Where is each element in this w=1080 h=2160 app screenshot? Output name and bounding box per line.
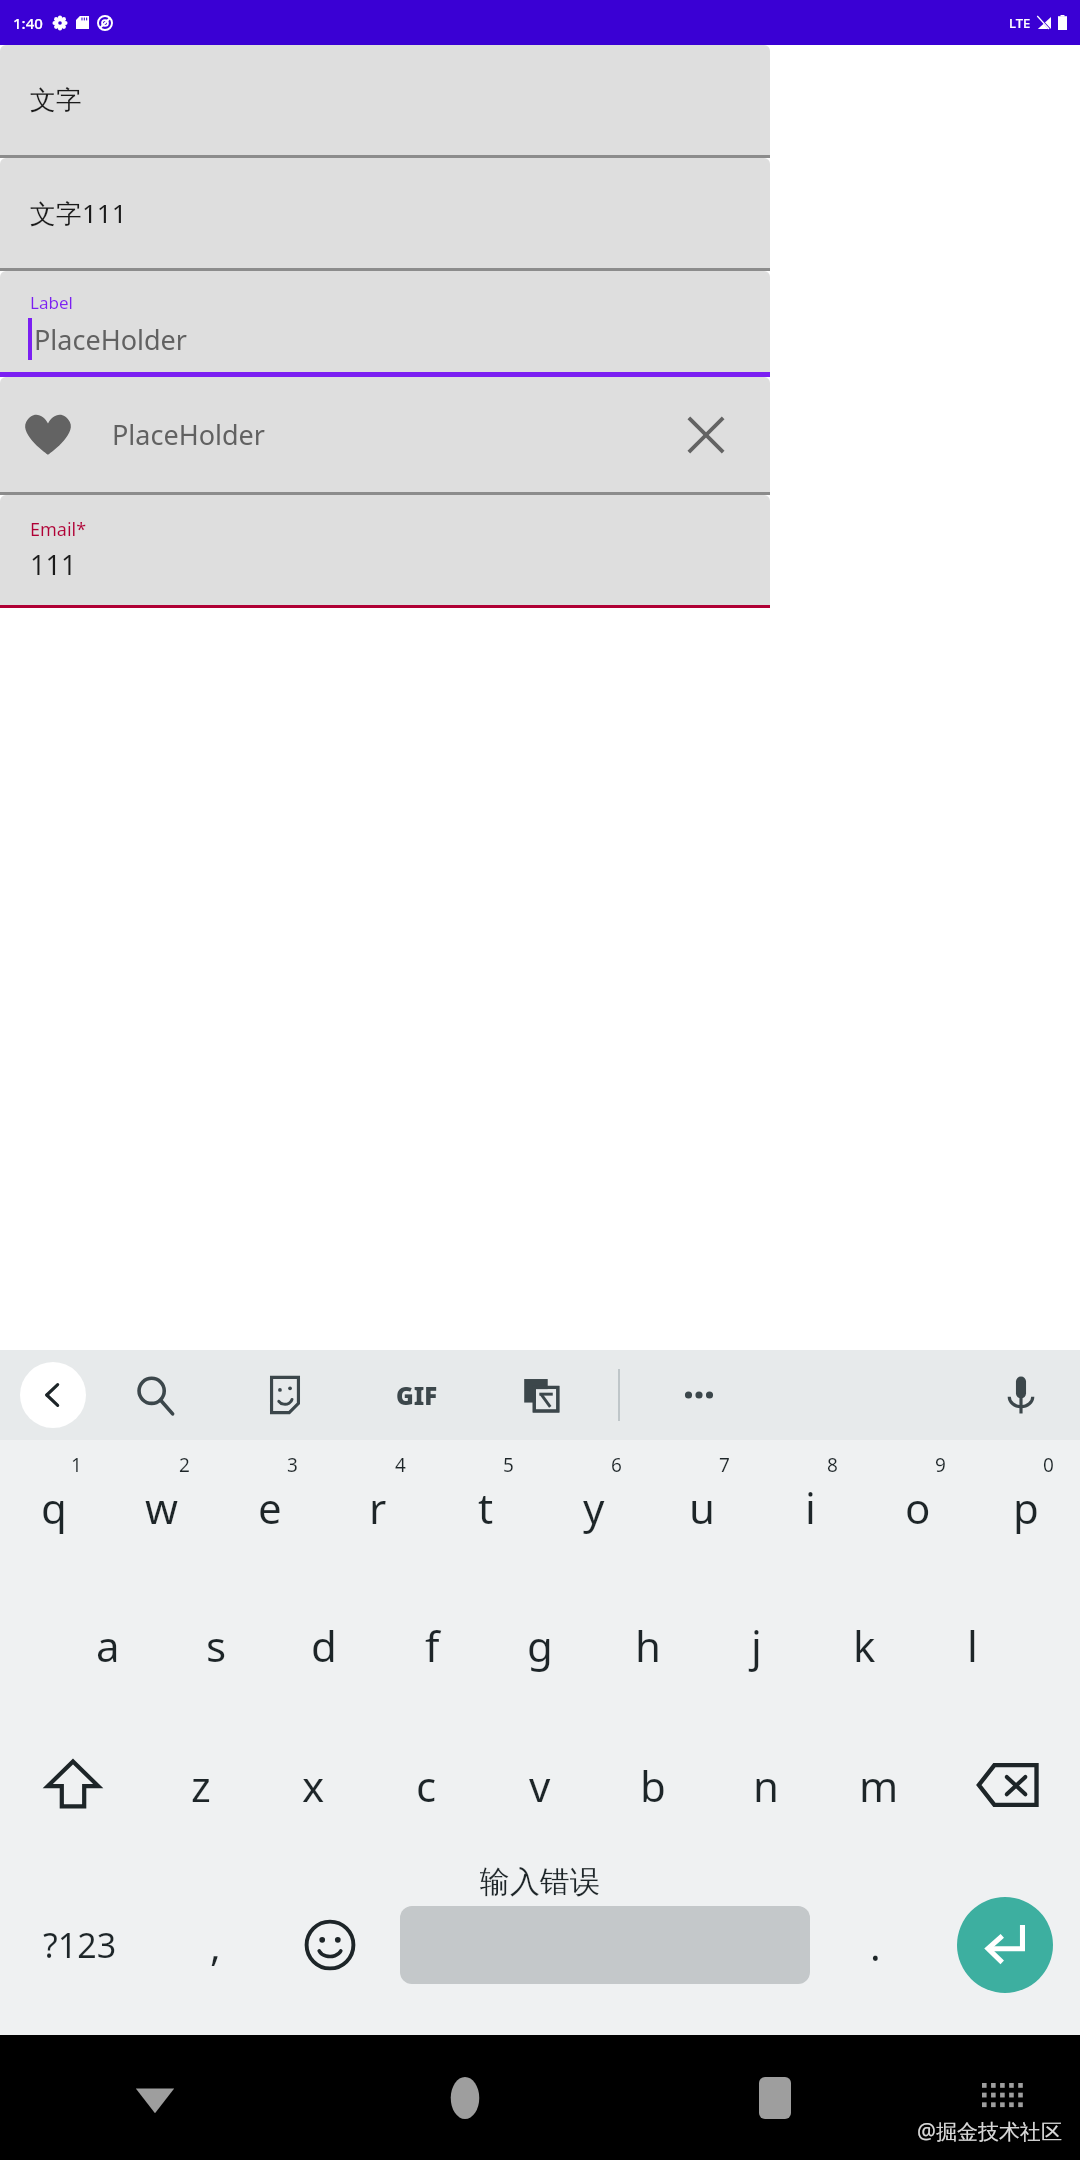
button[interactable]: Translate	[510, 1364, 572, 1426]
staticText: b	[640, 1757, 666, 1814]
button[interactable]: Voice input	[990, 1364, 1052, 1426]
button[interactable]: Hide keyboard	[0, 2035, 310, 2160]
staticText: z	[191, 1757, 211, 1814]
button[interactable]: Switch input method	[930, 2035, 1080, 2160]
staticText: o	[905, 1479, 931, 1536]
button[interactable]: Back	[20, 1362, 86, 1428]
staticText: k	[853, 1617, 876, 1674]
staticText: l	[967, 1617, 978, 1674]
staticText: j	[751, 1617, 762, 1674]
button[interactable]: Label	[0, 271, 770, 377]
staticText: 输入错误	[480, 1863, 600, 1901]
button[interactable]: y	[540, 1440, 648, 1575]
button[interactable]: Favorite	[0, 377, 770, 492]
button[interactable]: Stickers	[254, 1364, 316, 1426]
staticText: t	[478, 1479, 494, 1536]
staticText: g	[527, 1617, 553, 1674]
button[interactable]: j	[702, 1575, 810, 1715]
button[interactable]: q	[0, 1440, 108, 1575]
staticText: PlaceHolder	[112, 416, 666, 453]
button[interactable]: z	[145, 1715, 257, 1855]
staticText: 9	[935, 1452, 946, 1478]
button[interactable]: d	[270, 1575, 378, 1715]
staticText: PlaceHolder	[34, 321, 187, 358]
button[interactable]: w	[108, 1440, 216, 1575]
button[interactable]: Backspace	[935, 1715, 1080, 1855]
staticText: .	[870, 1918, 881, 1972]
button[interactable]: h	[594, 1575, 702, 1715]
button[interactable]: x	[257, 1715, 370, 1855]
button[interactable]: t	[432, 1440, 540, 1575]
other: Favorite	[22, 409, 74, 461]
button[interactable]: r	[324, 1440, 432, 1575]
staticText: LTE	[1009, 14, 1031, 32]
button[interactable]: 文字111	[0, 158, 770, 268]
button[interactable]: Enter	[957, 1897, 1053, 1993]
staticText: GIF	[396, 1379, 438, 1412]
button[interactable]: More options	[668, 1364, 730, 1426]
staticText: @掘金技术社区	[917, 2117, 1062, 2146]
staticText: m	[859, 1757, 899, 1814]
button[interactable]: k	[810, 1575, 918, 1715]
button[interactable]: f	[378, 1575, 486, 1715]
button[interactable]: u	[648, 1440, 756, 1575]
staticText: i	[805, 1479, 816, 1536]
staticText: 0	[1043, 1452, 1054, 1478]
staticText: f	[425, 1617, 440, 1674]
button[interactable]: ,	[160, 1855, 270, 2035]
staticText: w	[145, 1479, 179, 1536]
staticText: n	[753, 1757, 779, 1814]
staticText: 111	[30, 546, 77, 583]
button[interactable]: m	[822, 1715, 935, 1855]
staticText: u	[689, 1479, 715, 1536]
button[interactable]: Emoji	[270, 1855, 390, 2035]
staticText: e	[258, 1479, 282, 1536]
button[interactable]: Email*	[0, 495, 770, 608]
staticText: d	[311, 1617, 337, 1674]
button[interactable]: Clear	[666, 395, 746, 475]
button[interactable]: 文字	[0, 45, 770, 155]
button[interactable]: l	[918, 1575, 1026, 1715]
staticText: s	[206, 1617, 227, 1674]
staticText: c	[416, 1757, 437, 1814]
staticText: y	[583, 1479, 605, 1536]
button[interactable]: Search	[124, 1364, 186, 1426]
staticText: 文字	[30, 84, 82, 117]
button[interactable]: i	[756, 1440, 864, 1575]
staticText: v	[529, 1757, 551, 1814]
staticText: Email*	[30, 517, 87, 542]
button[interactable]: c	[370, 1715, 483, 1855]
button[interactable]: b	[596, 1715, 709, 1855]
button[interactable]: Home	[310, 2035, 620, 2160]
staticText: 1	[71, 1452, 82, 1478]
button[interactable]: v	[483, 1715, 596, 1855]
staticText: a	[96, 1617, 120, 1674]
button[interactable]: ?123	[0, 1855, 160, 2035]
button[interactable]: n	[709, 1715, 822, 1855]
staticText: 7	[719, 1452, 730, 1478]
staticText: r	[369, 1479, 387, 1536]
staticText: ?123	[43, 1922, 117, 1968]
button[interactable]: p	[972, 1440, 1080, 1575]
button[interactable]: a	[54, 1575, 162, 1715]
button[interactable]: Recents	[620, 2035, 930, 2160]
staticText: 文字111	[30, 195, 127, 231]
staticText: q	[41, 1479, 67, 1536]
staticText: x	[302, 1757, 325, 1814]
staticText: 2	[179, 1452, 190, 1478]
staticText: 6	[611, 1452, 622, 1478]
button[interactable]: Shift	[0, 1715, 145, 1855]
button[interactable]: .	[820, 1855, 930, 2035]
staticText: 3	[287, 1452, 298, 1478]
staticText: 8	[827, 1452, 838, 1478]
button[interactable]: s	[162, 1575, 270, 1715]
button[interactable]: e	[216, 1440, 324, 1575]
button[interactable]: g	[486, 1575, 594, 1715]
button[interactable]: o	[864, 1440, 972, 1575]
staticText: Label	[30, 291, 73, 314]
staticText: ,	[210, 1918, 221, 1972]
staticText: h	[635, 1617, 661, 1674]
staticText: 5	[503, 1452, 514, 1478]
button[interactable]: GIF	[386, 1364, 448, 1426]
